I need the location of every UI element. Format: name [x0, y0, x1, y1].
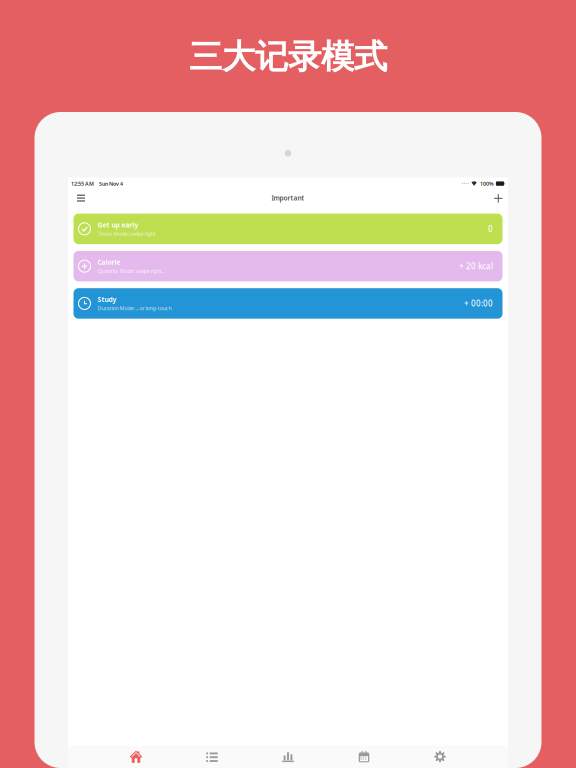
staticText: Study [97, 295, 116, 304]
button[interactable]: Home [98, 746, 174, 768]
staticText: Quantity Mode: swipe right... [97, 267, 164, 274]
button[interactable]: Calorie [73, 251, 502, 281]
staticText: Get up early [97, 220, 138, 229]
staticText: + 20 kcal [459, 261, 493, 271]
staticText: 12:55 AM [71, 180, 94, 187]
staticText: Important [271, 193, 304, 202]
button[interactable]: Statistics [250, 746, 326, 768]
staticText: Sun Nov 4 [99, 180, 123, 187]
button[interactable]: Study [73, 288, 502, 319]
staticText: 100% [480, 180, 494, 187]
staticText: 0 [488, 223, 493, 234]
staticText: 三大记录模式 [189, 36, 387, 78]
staticText: Duration Mode: ... or long-touch [97, 305, 171, 312]
staticText: Calorie [97, 258, 120, 267]
staticText: Times Mode: swipe right [97, 230, 155, 237]
button[interactable]: Get up early [73, 214, 502, 244]
button[interactable]: Add [485, 191, 508, 211]
button[interactable]: Calendar [326, 746, 402, 768]
button[interactable]: Menu [68, 192, 94, 211]
staticText: + 00:00 [464, 298, 493, 309]
button[interactable]: Records [174, 746, 250, 768]
button[interactable]: Settings [402, 746, 478, 768]
